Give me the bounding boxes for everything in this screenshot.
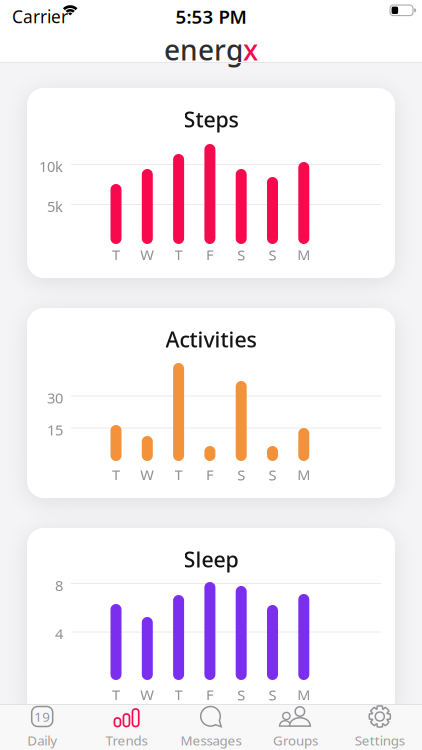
staticText: x bbox=[243, 31, 258, 68]
staticText: F bbox=[206, 465, 214, 484]
staticText: Carrier bbox=[12, 5, 68, 28]
staticText: T bbox=[175, 245, 183, 264]
staticText: T bbox=[112, 245, 120, 264]
staticText: 4 bbox=[55, 624, 63, 643]
staticText: 5k bbox=[47, 196, 63, 216]
button[interactable]: Messages bbox=[169, 704, 253, 750]
staticText: Settings bbox=[355, 731, 405, 749]
staticText: M bbox=[297, 465, 310, 484]
staticText: W bbox=[140, 245, 154, 264]
staticText: S bbox=[268, 685, 276, 704]
staticText: M bbox=[297, 685, 310, 704]
staticText: Trends bbox=[106, 731, 148, 749]
button[interactable]: 19 bbox=[0, 704, 84, 750]
staticText: S bbox=[237, 465, 245, 484]
staticText: 15 bbox=[47, 420, 63, 439]
staticText: 30 bbox=[47, 388, 63, 407]
staticText: S bbox=[268, 465, 276, 484]
staticText: F bbox=[206, 685, 214, 704]
staticText: Steps bbox=[183, 105, 238, 133]
staticText: M bbox=[297, 245, 310, 264]
staticText: 5:53 PM bbox=[175, 4, 246, 29]
staticText: W bbox=[140, 685, 154, 704]
staticText: energ bbox=[164, 31, 243, 68]
staticText: Groups bbox=[273, 731, 318, 749]
staticText: S bbox=[268, 245, 276, 264]
staticText: F bbox=[206, 245, 214, 264]
staticText: Daily bbox=[27, 731, 57, 749]
staticText: W bbox=[140, 465, 154, 484]
staticText: Messages bbox=[180, 731, 241, 749]
button[interactable]: Groups bbox=[253, 704, 338, 750]
staticText: 10k bbox=[39, 156, 63, 176]
staticText: S bbox=[237, 685, 245, 704]
staticText: T bbox=[175, 685, 183, 704]
staticText: 8 bbox=[55, 575, 63, 595]
button[interactable]: Trends bbox=[84, 704, 169, 750]
staticText: T bbox=[175, 465, 183, 484]
staticText: T bbox=[112, 465, 120, 484]
staticText: 19 bbox=[34, 708, 50, 725]
staticText: T bbox=[112, 685, 120, 704]
button[interactable]: Settings bbox=[338, 704, 422, 750]
staticText: Sleep bbox=[183, 545, 238, 573]
staticText: Activities bbox=[165, 325, 256, 353]
staticText: S bbox=[237, 245, 245, 264]
